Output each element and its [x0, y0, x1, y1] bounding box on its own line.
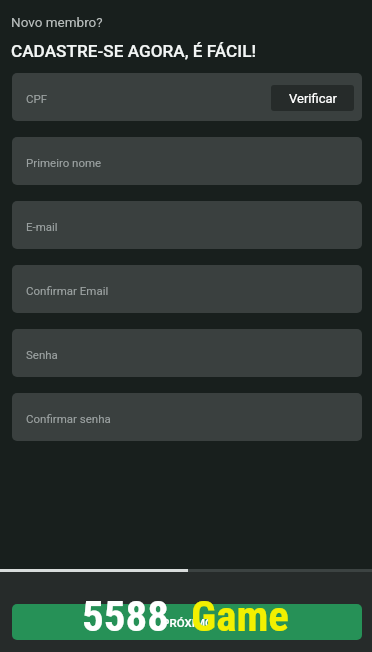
staticText: E-mail [26, 220, 58, 233]
staticText: Senha [26, 348, 58, 361]
button[interactable]: Confirmar senha [12, 393, 362, 441]
staticText: Verificar [289, 91, 337, 106]
staticText: CPF [26, 92, 48, 105]
staticText: Primeiro nome [26, 156, 102, 169]
staticText: Novo membro? [11, 14, 103, 30]
other: Progresso do cadastro [0, 569, 372, 572]
button[interactable]: Confirmar Email [12, 265, 362, 313]
button[interactable]: CPF [12, 73, 362, 121]
staticText: Game [191, 591, 289, 641]
staticText: Confirmar senha [26, 412, 111, 425]
staticText: Confirmar Email [26, 284, 109, 297]
staticText: PRÓXIMO [162, 616, 213, 629]
staticText: 5588 [82, 591, 169, 641]
button[interactable]: Senha [12, 329, 362, 377]
staticText: CADASTRE-SE AGORA, É FÁCIL! [11, 41, 256, 61]
button[interactable]: Verificar [271, 85, 354, 111]
button[interactable]: E-mail [12, 201, 362, 249]
button[interactable]: Primeiro nome [12, 137, 362, 185]
button[interactable]: PRÓXIMO [12, 604, 362, 640]
